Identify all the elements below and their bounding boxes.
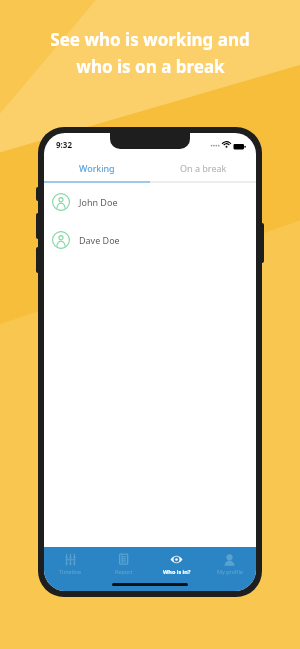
staticText: Who is in? <box>163 568 191 575</box>
button[interactable]: Who is in? <box>150 547 203 581</box>
button[interactable]: Dave Doe <box>44 229 256 251</box>
staticText: 9:32 <box>56 139 72 150</box>
staticText: See who is working and <box>50 28 250 51</box>
staticText: Dave Doe <box>79 234 120 246</box>
staticText: John Doe <box>79 196 118 208</box>
staticText: On a break <box>180 162 227 174</box>
button[interactable]: My profile <box>203 547 256 581</box>
staticText: Timeline <box>59 568 82 575</box>
staticText: who is on a break <box>76 55 225 78</box>
staticText: Working <box>79 162 115 174</box>
button[interactable]: John Doe <box>44 191 256 213</box>
staticText: My profile <box>217 568 243 575</box>
staticText: Report <box>115 568 133 575</box>
button[interactable]: On a break <box>150 155 256 181</box>
button[interactable]: Report <box>97 547 150 581</box>
button[interactable]: Timeline <box>44 547 97 581</box>
button[interactable]: Working <box>44 155 150 181</box>
